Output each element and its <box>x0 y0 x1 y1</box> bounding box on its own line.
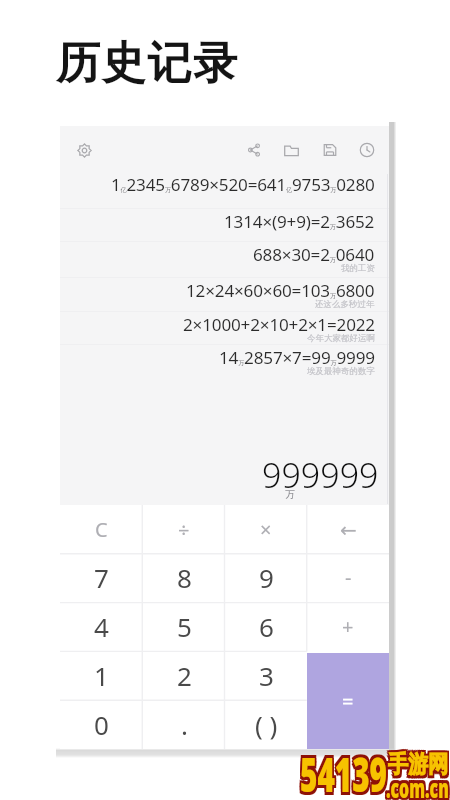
staticText: 7 <box>94 560 109 595</box>
staticText: 手游网 <box>388 748 448 777</box>
staticText: 手游网 <box>386 750 446 779</box>
button[interactable]: C <box>60 505 143 553</box>
staticText: 手游网 <box>388 750 448 779</box>
button[interactable]: 3 <box>225 651 307 700</box>
button[interactable]: Share <box>241 137 267 163</box>
staticText: 9 <box>259 560 274 595</box>
button[interactable]: 9 <box>225 553 307 602</box>
button[interactable]: = <box>307 653 389 749</box>
staticText: 54139 <box>300 745 387 800</box>
staticText: 埃及最神奇的数字 <box>307 366 375 377</box>
button[interactable]: 6 <box>225 602 307 651</box>
staticText: .com.cn <box>384 773 448 800</box>
button[interactable]: 2 <box>143 651 225 700</box>
staticText: 12×24×60×60=103万6800 <box>186 279 375 302</box>
staticText: 手游网 <box>386 748 446 777</box>
staticText: 3 <box>259 658 274 693</box>
staticText: C <box>95 516 108 543</box>
button[interactable]: 7 <box>60 553 143 602</box>
staticText: 999999 <box>262 452 379 498</box>
staticText: 6 <box>259 609 274 644</box>
staticText: 还这么多秒过年 <box>315 299 375 310</box>
staticText: .com.cn <box>386 770 449 800</box>
button[interactable]: . <box>143 700 225 749</box>
staticText: 54139 <box>298 742 385 800</box>
staticText: 5 <box>177 609 192 644</box>
button[interactable]: 0 <box>60 700 143 749</box>
staticText: - <box>345 564 352 591</box>
staticText: ÷ <box>178 516 190 543</box>
button[interactable]: Save <box>316 136 344 164</box>
staticText: = <box>342 688 354 715</box>
staticText: .com.cn <box>384 767 448 800</box>
button[interactable]: 5 <box>143 602 225 651</box>
button[interactable]: 2×1000+2×10+2×1=2022 <box>60 312 389 345</box>
staticText: 我的工资 <box>341 263 375 274</box>
button[interactable]: 4 <box>60 602 143 651</box>
staticText: 万 <box>285 488 295 501</box>
staticText: 688×30=2万0640 <box>253 243 375 266</box>
staticText: 手游网 <box>388 752 448 781</box>
staticText: 今年大家都好运啊 <box>307 333 375 343</box>
staticText: 1314×(9+9)=2万3652 <box>224 210 375 233</box>
button[interactable]: ( ) <box>225 700 307 749</box>
staticText: 1亿2345万6789×520=641亿9753万0280 <box>111 173 375 196</box>
button[interactable]: Open folder <box>277 136 306 165</box>
staticText: × <box>260 516 272 543</box>
button[interactable]: × <box>225 505 307 553</box>
button[interactable]: 8 <box>143 553 225 602</box>
staticText: 历史记录 <box>56 36 239 91</box>
staticText: 54139 <box>302 739 389 800</box>
button[interactable]: 12×24×60×60=103万6800 <box>60 278 389 312</box>
staticText: .com.cn <box>386 767 449 800</box>
staticText: 手游网 <box>390 752 450 781</box>
button[interactable]: ← <box>307 505 389 553</box>
staticText: + <box>342 613 354 640</box>
staticText: 54139 <box>302 742 389 800</box>
staticText: .com.cn <box>386 773 449 800</box>
staticText: 手游网 <box>386 752 446 781</box>
staticText: .com.cn <box>388 767 450 800</box>
button[interactable]: History <box>353 136 381 164</box>
staticText: 54139 <box>298 739 385 800</box>
button[interactable]: 1314×(9+9)=2万3652 <box>60 209 389 242</box>
staticText: 54139 <box>298 745 385 800</box>
staticText: 手游网 <box>390 748 450 777</box>
staticText: 54139 <box>300 739 387 800</box>
button[interactable]: 1亿2345万6789×520=641亿9753万0280 <box>60 172 389 209</box>
staticText: .com.cn <box>388 773 450 800</box>
button[interactable]: 1 <box>60 651 143 700</box>
staticText: 14万2857×7=99万9999 <box>219 346 375 369</box>
button[interactable]: 14万2857×7=99万9999 <box>60 345 389 379</box>
staticText: .com.cn <box>388 770 450 800</box>
staticText: .com.cn <box>384 770 448 800</box>
staticText: 54139 <box>302 745 389 800</box>
button[interactable]: + <box>307 602 389 651</box>
staticText: 2 <box>177 658 192 693</box>
button[interactable]: ÷ <box>143 505 225 553</box>
button[interactable]: - <box>307 553 389 602</box>
staticText: 0 <box>94 707 109 742</box>
staticText: 2×1000+2×10+2×1=2022 <box>183 313 375 336</box>
staticText: ← <box>340 518 357 541</box>
staticText: 4 <box>94 609 109 644</box>
staticText: 手游网 <box>390 750 450 779</box>
staticText: . <box>181 707 188 742</box>
staticText: ( ) <box>255 707 278 742</box>
button[interactable]: Settings <box>70 136 99 165</box>
button[interactable]: 688×30=2万0640 <box>60 242 389 278</box>
staticText: 1 <box>94 658 109 693</box>
staticText: 8 <box>177 560 192 595</box>
staticText: 54139 <box>300 742 387 800</box>
